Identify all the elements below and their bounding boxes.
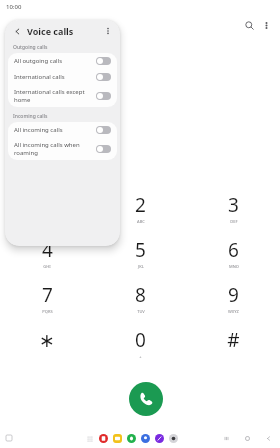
staticText: ABC	[137, 219, 145, 224]
button[interactable]: Home	[242, 433, 253, 444]
button[interactable]: All outgoing calls	[8, 53, 117, 69]
button[interactable]: More options	[258, 17, 274, 33]
button[interactable]: 5	[94, 230, 187, 275]
button[interactable]: 6	[187, 230, 280, 275]
staticText: 6	[228, 237, 239, 263]
button[interactable]: 7	[0, 275, 94, 320]
staticText: All incoming calls	[14, 126, 92, 134]
button[interactable]: 9	[187, 275, 280, 320]
button[interactable]: Recents	[221, 433, 232, 444]
button[interactable]: 3	[187, 185, 280, 230]
button[interactable]: 8	[94, 275, 187, 320]
staticText: All outgoing calls	[14, 57, 92, 65]
staticText: 8	[135, 282, 146, 308]
staticText: 5	[135, 237, 146, 263]
staticText: PQRS	[42, 309, 53, 314]
button[interactable]: App 3	[140, 433, 151, 444]
button[interactable]: Navigate up	[10, 24, 24, 38]
staticText: Incoming calls	[13, 113, 48, 120]
button[interactable]: App 1	[112, 433, 123, 444]
staticText: All incoming calls when roaming	[14, 141, 92, 157]
button[interactable]: Call	[129, 382, 163, 416]
button[interactable]: Keyboard	[4, 433, 14, 443]
staticText: International calls except home	[14, 88, 92, 104]
button[interactable]: App 4	[154, 433, 165, 444]
staticText: 4	[42, 237, 53, 263]
staticText: DEF	[230, 219, 238, 224]
button[interactable]: ∗	[0, 320, 94, 365]
button[interactable]: Back	[263, 433, 274, 444]
button[interactable]: 4	[0, 230, 94, 275]
button[interactable]: #	[187, 320, 280, 365]
staticText: ∗	[39, 329, 55, 351]
staticText: MNO	[229, 264, 239, 269]
button[interactable]: International calls	[8, 69, 117, 85]
staticText: JKL	[138, 264, 144, 269]
button[interactable]: Search	[240, 16, 258, 34]
button[interactable]: More options	[101, 24, 115, 38]
staticText: 3	[228, 192, 239, 218]
staticText: #	[227, 327, 240, 353]
staticText: 7	[42, 282, 53, 308]
button[interactable]: All apps	[85, 434, 95, 444]
button[interactable]: All incoming calls when roaming	[8, 138, 117, 160]
staticText: 0	[135, 327, 146, 353]
button[interactable]: International calls except home	[8, 85, 117, 107]
button[interactable]: App 0	[98, 433, 109, 444]
staticText: GHI	[43, 264, 51, 269]
staticText: Voice calls	[27, 25, 74, 37]
staticText: Outgoing calls	[13, 44, 48, 51]
staticText: WXYZ	[228, 309, 239, 314]
button[interactable]: 0	[94, 320, 187, 365]
button[interactable]: All incoming calls	[8, 122, 117, 138]
staticText: TUV	[137, 309, 145, 314]
staticText: International calls	[14, 73, 92, 81]
button[interactable]: 2	[94, 185, 187, 230]
staticText: 9	[228, 282, 239, 308]
staticText: 10:00	[6, 3, 22, 11]
staticText: +	[139, 354, 142, 359]
staticText: 2	[135, 192, 146, 218]
button[interactable]: App 2	[126, 433, 137, 444]
button[interactable]: App 5	[168, 433, 179, 444]
